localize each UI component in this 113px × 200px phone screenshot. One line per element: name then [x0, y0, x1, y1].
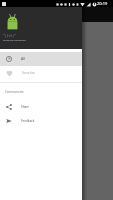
- other: Favorites: [6, 70, 13, 77]
- staticText: Shrug off the world!: [3, 38, 26, 41]
- other: Share: [6, 104, 12, 110]
- staticText: Communicate: [5, 90, 24, 94]
- button[interactable]: Share: [0, 100, 82, 114]
- staticText: Feedback: [21, 119, 35, 123]
- other: Feedback: [6, 118, 12, 124]
- button[interactable]: Favorites: [0, 66, 82, 80]
- staticText: ¯\_(ツ)_/¯: [3, 34, 17, 38]
- staticText: Share: [21, 105, 30, 109]
- staticText: Favorites: [22, 71, 35, 75]
- staticText: All: [21, 57, 25, 61]
- other: All: [6, 56, 12, 62]
- staticText: 20:19: [97, 1, 108, 6]
- button[interactable]: Feedback: [0, 114, 82, 128]
- button[interactable]: All: [0, 52, 82, 66]
